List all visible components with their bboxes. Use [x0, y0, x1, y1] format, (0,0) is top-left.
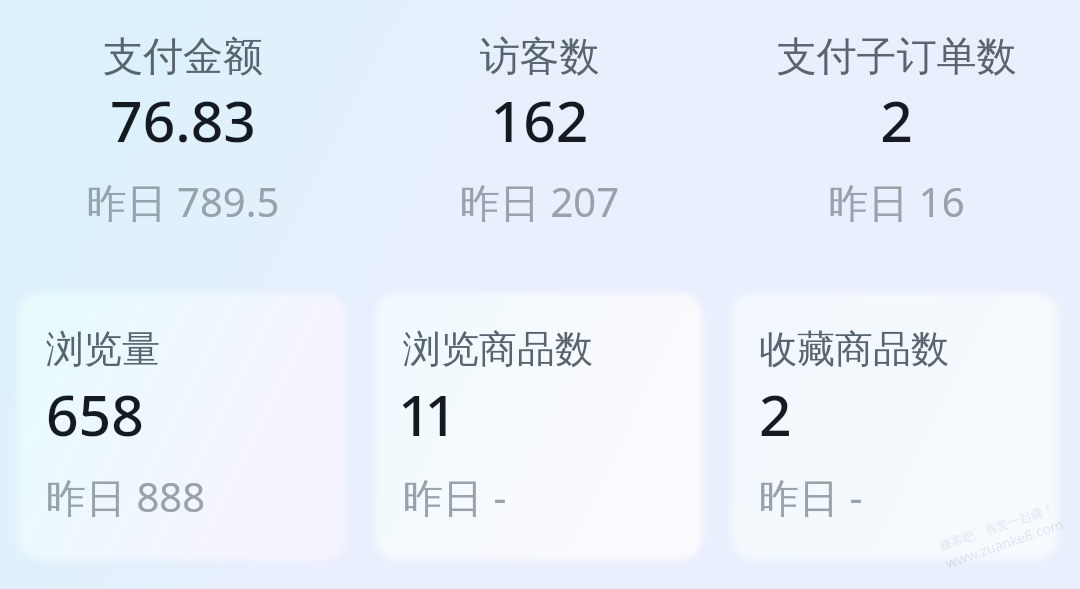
staticText: 浏览商品数 — [403, 325, 593, 373]
staticText: 658 — [46, 375, 144, 453]
staticText: 支付子订单数 — [718, 31, 1075, 81]
staticText: 76.83 — [5, 81, 361, 159]
staticText: 赚客吧，有奖一起赚！ — [938, 500, 1056, 553]
staticText: 昨日 - — [759, 469, 863, 524]
button[interactable]: 收藏商品数 — [731, 293, 1058, 560]
other: zuanke8 watermark — [938, 499, 1066, 572]
staticText: 收藏商品数 — [759, 325, 949, 373]
button[interactable]: 浏览商品数 — [375, 293, 702, 560]
staticText: 2 — [718, 81, 1075, 159]
staticText: 昨日 16 — [718, 174, 1075, 229]
button[interactable]: 访客数 — [361, 0, 718, 260]
staticText: 昨日 - — [403, 469, 507, 524]
button[interactable]: 支付金额 — [5, 0, 361, 260]
staticText: 浏览量 — [46, 325, 160, 373]
staticText: 支付金额 — [5, 31, 361, 81]
staticText: 昨日 888 — [46, 469, 206, 524]
staticText: 11 — [398, 375, 452, 453]
staticText: 昨日 789.5 — [5, 174, 361, 229]
staticText: 2 — [759, 375, 792, 453]
button[interactable]: 支付子订单数 — [718, 0, 1075, 260]
staticText: 162 — [361, 81, 718, 159]
staticText: www.zuanke8.com — [943, 514, 1066, 572]
staticText: 昨日 207 — [361, 174, 718, 229]
button[interactable]: 浏览量 — [18, 293, 346, 560]
staticText: 访客数 — [361, 31, 718, 81]
